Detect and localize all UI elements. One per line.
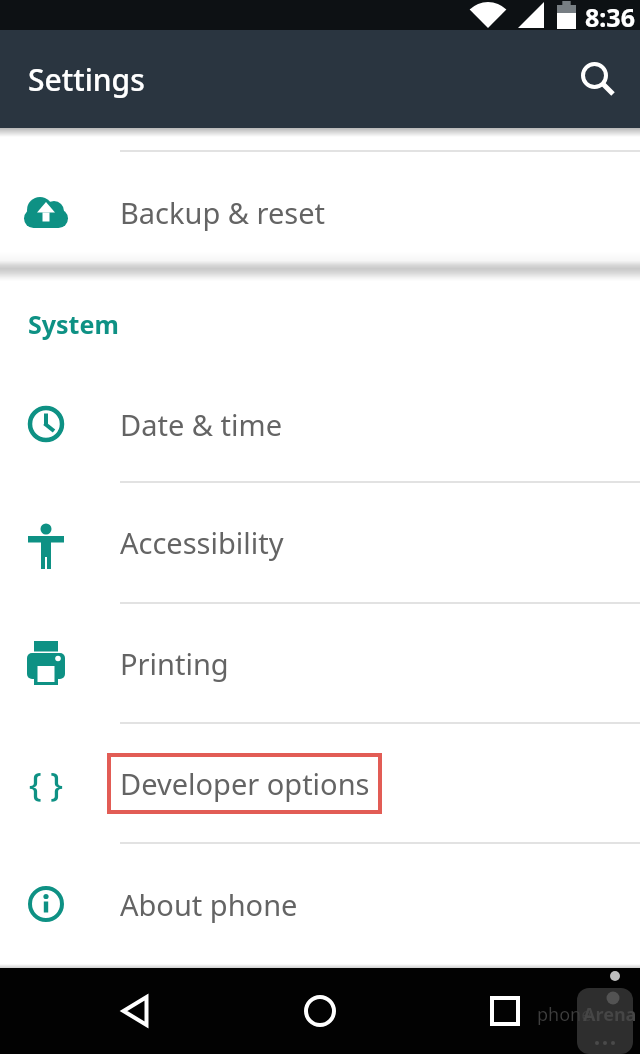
staticText: Settings <box>28 59 145 100</box>
staticText: Backup & reset <box>120 193 326 232</box>
staticText: Accessibility <box>120 523 284 562</box>
staticText: Developer options <box>120 764 370 803</box>
button[interactable]: Printing <box>0 604 640 722</box>
button[interactable] <box>578 59 618 99</box>
staticText: phone <box>537 1002 592 1027</box>
staticText: 8:36 <box>585 0 635 30</box>
button[interactable]: Backup & reset <box>0 152 640 252</box>
staticText: System <box>28 307 119 341</box>
staticText: Date & time <box>120 405 282 444</box>
button[interactable] <box>477 983 533 1039</box>
button[interactable] <box>107 983 163 1039</box>
button[interactable]: About phone <box>0 844 640 964</box>
staticText: Printing <box>120 644 229 683</box>
button[interactable]: { } <box>0 724 640 842</box>
staticText: Arena <box>583 1002 637 1027</box>
button[interactable]: Date & time <box>0 367 640 481</box>
button[interactable] <box>292 983 348 1039</box>
button[interactable]: Accessibility <box>0 483 640 602</box>
staticText: About phone <box>120 885 298 924</box>
staticText: { } <box>29 761 63 806</box>
